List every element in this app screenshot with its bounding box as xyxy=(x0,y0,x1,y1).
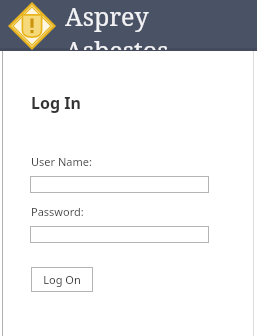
button[interactable]: Text input xyxy=(30,176,209,193)
staticText: User Name: xyxy=(31,154,92,169)
button[interactable]: Log On xyxy=(31,267,93,292)
staticText: Log In xyxy=(31,92,81,114)
staticText: Log On xyxy=(43,272,81,287)
staticText: Password: xyxy=(31,204,84,219)
other: Asprey Asbestos logo xyxy=(8,2,56,50)
button[interactable]: Text input xyxy=(30,226,209,243)
staticText: Asprey Asbestos xyxy=(65,0,257,50)
